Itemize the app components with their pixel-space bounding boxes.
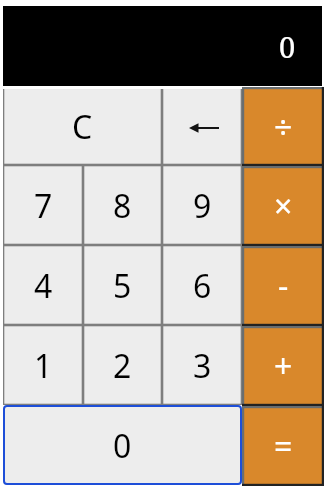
staticText: 0 (113, 424, 132, 468)
button[interactable]: + (242, 326, 324, 406)
button[interactable] (162, 89, 242, 165)
staticText: ÷ (274, 105, 293, 149)
staticText: + (274, 344, 293, 388)
staticText: 2 (113, 344, 132, 388)
staticText: 0 (279, 27, 296, 66)
button[interactable]: 7 (3, 165, 83, 245)
staticText: 1 (34, 344, 53, 388)
staticText: 8 (113, 184, 132, 228)
button[interactable]: 3 (162, 325, 242, 405)
button[interactable]: 2 (83, 325, 162, 405)
button[interactable]: 0 (3, 405, 242, 485)
button[interactable]: 8 (83, 165, 162, 245)
button[interactable]: 5 (83, 245, 162, 325)
button[interactable]: - (242, 246, 324, 326)
button[interactable]: 4 (3, 245, 83, 325)
button[interactable]: 6 (162, 245, 242, 325)
staticText: 4 (34, 264, 53, 308)
button[interactable]: ÷ (242, 87, 324, 166)
staticText: - (278, 264, 289, 308)
staticText: = (274, 424, 293, 468)
button[interactable]: × (242, 166, 324, 246)
staticText: 7 (34, 184, 53, 228)
button[interactable]: 9 (162, 165, 242, 245)
staticText: C (72, 105, 93, 149)
button[interactable]: 1 (3, 325, 83, 405)
staticText: 5 (113, 264, 132, 308)
staticText: 3 (193, 344, 212, 388)
staticText: 6 (193, 264, 212, 308)
staticText: × (274, 184, 293, 228)
button[interactable]: C (3, 89, 162, 165)
button[interactable]: = (242, 406, 324, 486)
staticText: 9 (193, 184, 212, 228)
